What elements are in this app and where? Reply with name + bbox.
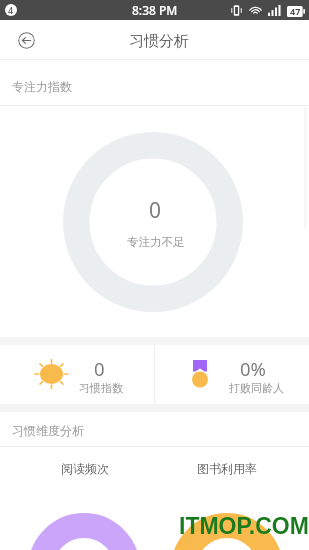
button[interactable]: 0% <box>155 345 309 404</box>
button[interactable]: 0 <box>0 345 154 404</box>
button[interactable]: 图书利用率 <box>197 461 257 476</box>
staticText: 习惯分析 <box>129 32 189 51</box>
staticText: 阅读频次 <box>61 461 109 476</box>
staticText: 习惯指数 <box>79 381 123 395</box>
staticText: 打败同龄人 <box>229 381 284 395</box>
staticText: 专注力不足 <box>127 235 185 249</box>
staticText: 0 <box>149 196 162 225</box>
staticText: 4 <box>8 4 14 16</box>
button[interactable]: Back <box>18 32 35 49</box>
staticText: 0% <box>240 356 266 381</box>
button[interactable]: 阅读频次 <box>61 461 109 476</box>
staticText: 专注力指数 <box>12 79 72 94</box>
staticText: 0 <box>94 356 105 381</box>
staticText: ITMOP.COM <box>179 513 309 539</box>
staticText: 习惯维度分析 <box>12 423 84 438</box>
staticText: 47 <box>290 5 301 17</box>
staticText: 图书利用率 <box>197 461 257 476</box>
staticText: 8:38 PM <box>132 2 178 18</box>
